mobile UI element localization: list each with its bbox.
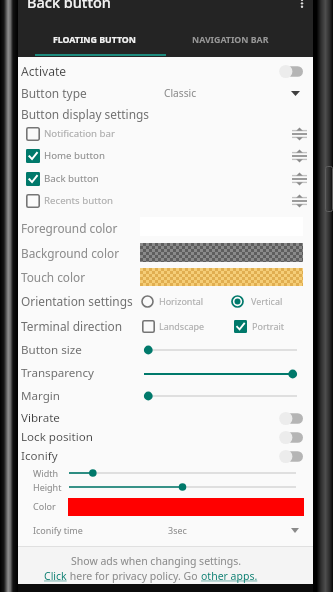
button[interactable]: Slider bbox=[144, 387, 297, 405]
staticText: other apps. bbox=[201, 569, 258, 583]
staticText: Notification bar bbox=[44, 127, 115, 140]
staticText: Classic bbox=[164, 86, 197, 100]
button[interactable]: Not selected bbox=[141, 295, 154, 308]
staticText: here for privacy policy. Go bbox=[67, 569, 201, 583]
staticText: Width bbox=[33, 467, 59, 479]
staticText: Home button bbox=[44, 149, 105, 162]
staticText: Touch color bbox=[21, 269, 86, 285]
button[interactable] bbox=[18, 447, 313, 467]
staticText: Color bbox=[33, 500, 56, 512]
staticText: Button display settings bbox=[21, 106, 149, 122]
staticText: Orientation settings bbox=[21, 293, 133, 309]
staticText: Show ads when changing settings. bbox=[71, 554, 242, 568]
button[interactable]: Adjust bbox=[292, 192, 307, 210]
staticText: Vertical bbox=[251, 295, 283, 307]
staticText: Button type bbox=[21, 85, 87, 101]
button[interactable]: Adjust bbox=[292, 170, 307, 188]
button[interactable] bbox=[18, 408, 313, 428]
staticText: NAVIGATION BAR bbox=[192, 34, 269, 46]
button[interactable]: Checked bbox=[26, 149, 40, 163]
button[interactable]: Toggle bbox=[279, 411, 303, 426]
staticText: Landscape bbox=[159, 320, 205, 332]
button[interactable] bbox=[18, 61, 313, 81]
staticText: Horizontal bbox=[159, 295, 204, 307]
button[interactable]: Unchecked bbox=[26, 194, 40, 208]
button[interactable] bbox=[18, 520, 313, 540]
button[interactable] bbox=[18, 83, 313, 103]
button[interactable]: Slider bbox=[69, 478, 296, 496]
button[interactable]: Slider bbox=[144, 341, 297, 359]
button[interactable]: Colour swatch bbox=[140, 268, 303, 286]
staticText: Portrait bbox=[252, 320, 285, 332]
button[interactable] bbox=[18, 191, 313, 211]
staticText: Terminal direction bbox=[21, 318, 123, 334]
button[interactable]: More options bbox=[293, 0, 311, 12]
button[interactable]: Toggle bbox=[279, 449, 303, 464]
button[interactable]: Unchecked bbox=[26, 127, 40, 141]
button[interactable] bbox=[18, 316, 313, 336]
staticText: Transparency bbox=[21, 365, 95, 381]
button[interactable]: Checked bbox=[234, 320, 247, 333]
staticText: Vibrate bbox=[21, 410, 60, 426]
staticText: Height bbox=[33, 481, 62, 493]
button[interactable] bbox=[18, 124, 313, 144]
button[interactable] bbox=[166, 26, 314, 56]
staticText: Back button bbox=[27, 0, 111, 12]
staticText: Lock position bbox=[21, 429, 93, 445]
button[interactable]: Toggle bbox=[279, 64, 303, 79]
button[interactable] bbox=[18, 26, 166, 56]
button[interactable] bbox=[18, 146, 313, 166]
staticText: Foreground color bbox=[21, 220, 118, 236]
button[interactable]: Selected bbox=[231, 295, 244, 308]
button[interactable]: Colour swatch bbox=[140, 243, 303, 262]
staticText: Iconify time bbox=[33, 524, 83, 536]
staticText: Click bbox=[44, 569, 67, 583]
staticText: Background color bbox=[21, 245, 120, 261]
staticText: Activate bbox=[21, 63, 67, 79]
button[interactable]: Slider bbox=[69, 464, 296, 482]
staticText: Button size bbox=[21, 342, 82, 358]
button[interactable] bbox=[18, 428, 313, 448]
button[interactable]: Click bbox=[44, 569, 258, 583]
staticText: Margin bbox=[21, 388, 60, 404]
button[interactable]: Adjust bbox=[292, 125, 307, 143]
button[interactable]: Checked bbox=[26, 172, 40, 186]
button[interactable] bbox=[18, 169, 313, 189]
staticText: 3sec bbox=[168, 524, 187, 536]
staticText: Recents button bbox=[44, 194, 114, 207]
button[interactable]: Adjust bbox=[292, 147, 307, 165]
staticText: Back button bbox=[44, 172, 99, 185]
staticText: Iconify bbox=[21, 448, 58, 464]
button[interactable]: Toggle bbox=[279, 430, 303, 445]
button[interactable] bbox=[18, 291, 313, 311]
button[interactable]: Unchecked bbox=[142, 320, 155, 333]
staticText: FLOATING BUTTON bbox=[53, 34, 136, 46]
button[interactable]: Slider bbox=[144, 365, 297, 383]
